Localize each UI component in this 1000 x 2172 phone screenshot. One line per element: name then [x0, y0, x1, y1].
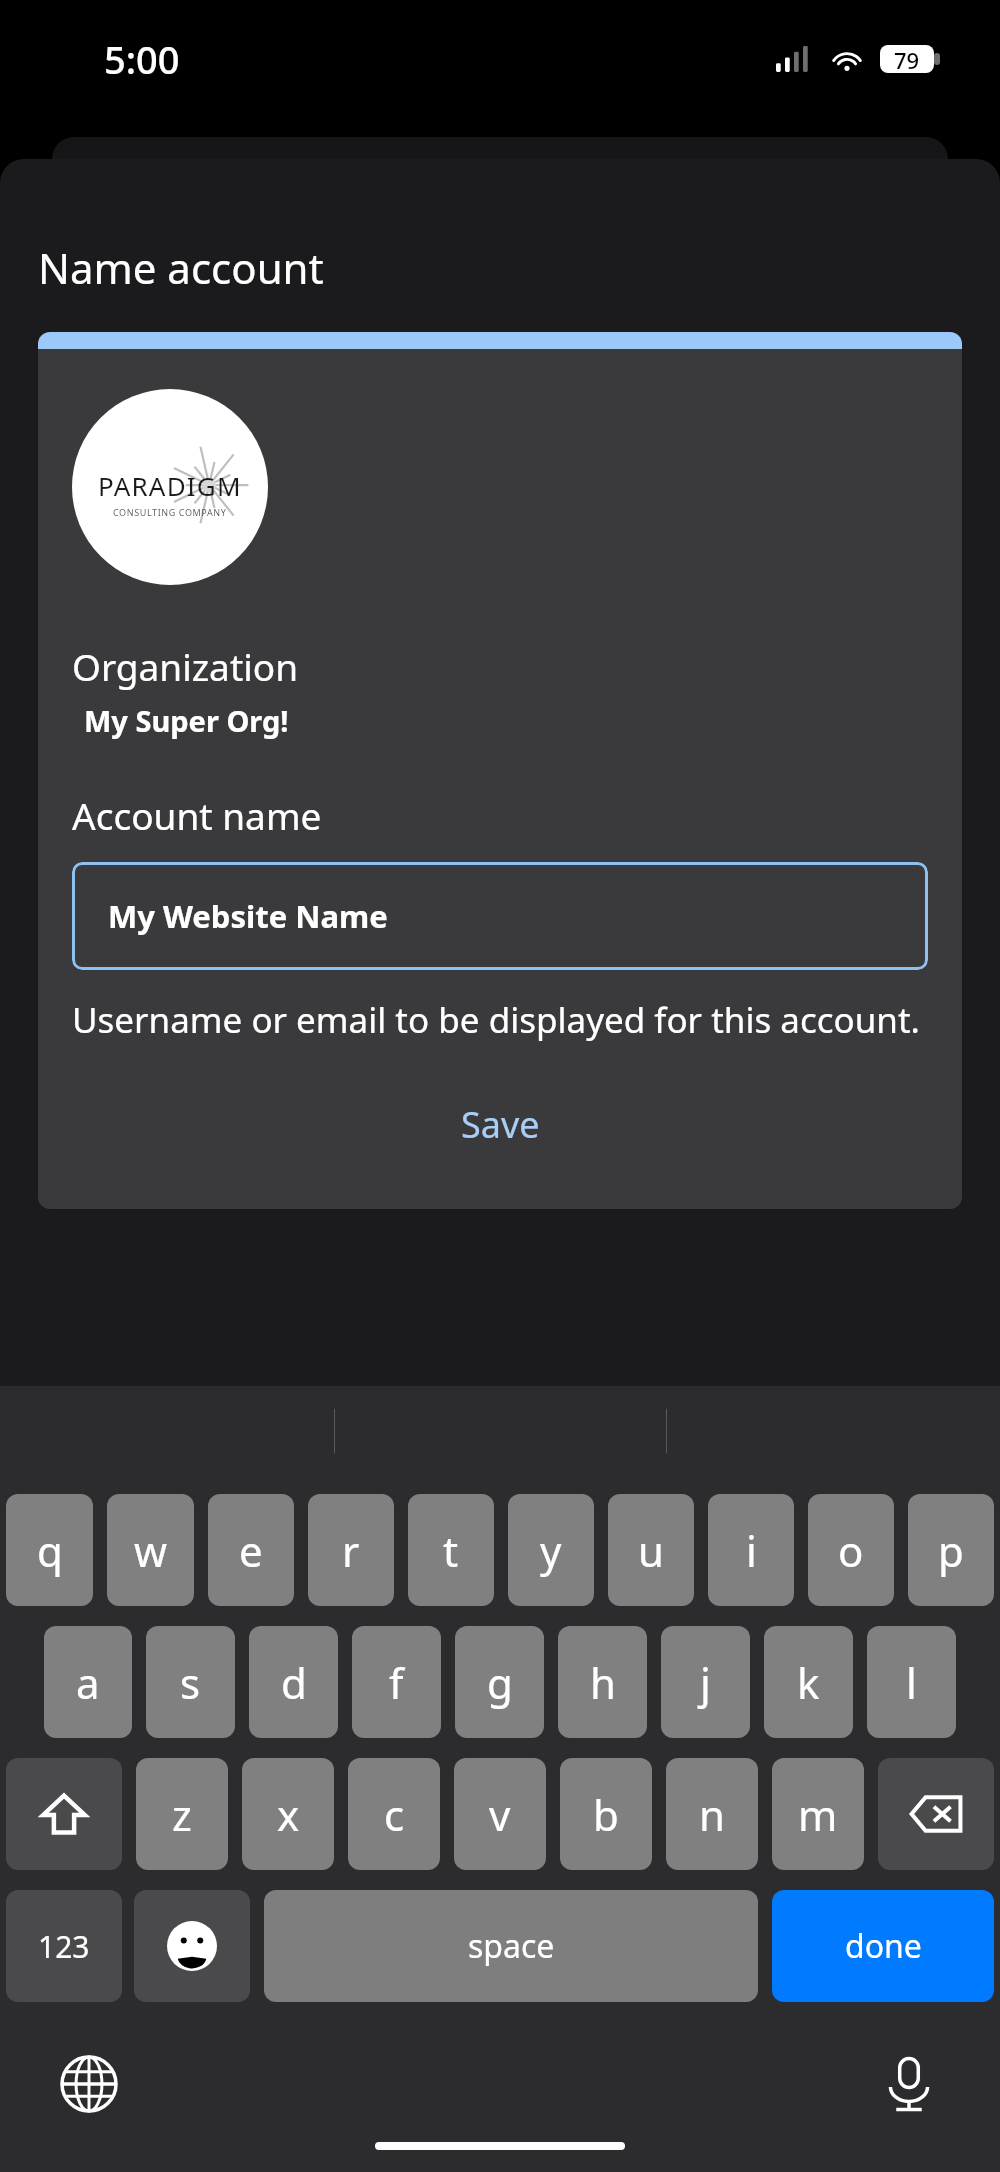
staticText: o — [838, 1522, 864, 1579]
button[interactable]: g — [455, 1626, 544, 1738]
staticText: u — [638, 1522, 664, 1579]
staticText: space — [468, 1924, 555, 1968]
staticText: Account name — [72, 790, 322, 840]
button[interactable]: Backspace — [878, 1758, 994, 1870]
staticText: p — [938, 1522, 964, 1579]
staticText: z — [172, 1786, 192, 1843]
button[interactable]: space — [264, 1890, 758, 2002]
button[interactable]: d — [249, 1626, 338, 1738]
staticText: i — [746, 1522, 757, 1579]
staticText: f — [389, 1654, 404, 1711]
button[interactable]: s — [146, 1626, 235, 1738]
staticText: 79 — [894, 45, 920, 73]
button[interactable]: x — [242, 1758, 334, 1870]
button[interactable]: r — [308, 1494, 394, 1606]
staticText: CONSULTING COMPANY — [113, 506, 227, 518]
staticText: g — [487, 1654, 513, 1711]
staticText: My Super Org! — [84, 701, 289, 740]
button[interactable]: v — [454, 1758, 546, 1870]
staticText: Save — [461, 1100, 540, 1149]
staticText: t — [443, 1522, 459, 1579]
staticText: q — [37, 1522, 63, 1579]
staticText: k — [797, 1654, 820, 1711]
staticText: Name account — [38, 239, 324, 296]
staticText: 5:00 — [104, 33, 180, 85]
button[interactable]: k — [764, 1626, 853, 1738]
button[interactable]: Emoji — [134, 1890, 250, 2002]
button[interactable]: Dictate — [880, 2055, 938, 2113]
button[interactable]: Save — [461, 1100, 540, 1149]
button[interactable]: f — [352, 1626, 441, 1738]
button[interactable]: l — [867, 1626, 956, 1738]
staticText: m — [798, 1786, 838, 1843]
staticText: n — [699, 1786, 725, 1843]
button[interactable]: My Website Name — [72, 862, 928, 970]
staticText: s — [180, 1654, 201, 1711]
button[interactable]: b — [560, 1758, 652, 1870]
button[interactable]: h — [558, 1626, 647, 1738]
button[interactable]: Shift — [6, 1758, 122, 1870]
button[interactable]: y — [508, 1494, 594, 1606]
staticText: d — [281, 1654, 307, 1711]
staticText: My Website Name — [108, 895, 388, 937]
staticText: h — [590, 1654, 616, 1711]
staticText: Organization — [72, 641, 299, 691]
staticText: w — [134, 1522, 168, 1579]
staticText: b — [593, 1786, 619, 1843]
staticText: e — [239, 1522, 263, 1579]
staticText: c — [384, 1786, 405, 1843]
staticText: j — [700, 1654, 711, 1711]
button[interactable]: m — [772, 1758, 864, 1870]
staticText: v — [489, 1786, 511, 1843]
button[interactable]: done — [772, 1890, 994, 2002]
button[interactable]: u — [608, 1494, 694, 1606]
staticText: l — [906, 1654, 917, 1711]
button[interactable]: t — [408, 1494, 494, 1606]
staticText: 123 — [38, 1926, 90, 1967]
button[interactable]: w — [107, 1494, 194, 1606]
button[interactable]: n — [666, 1758, 758, 1870]
button[interactable]: Change keyboard — [60, 2055, 118, 2113]
staticText: r — [342, 1522, 360, 1579]
button[interactable]: e — [208, 1494, 294, 1606]
staticText: PARADIGM — [98, 468, 242, 503]
button[interactable]: q — [6, 1494, 93, 1606]
staticText: a — [76, 1654, 100, 1711]
button[interactable]: p — [908, 1494, 994, 1606]
staticText: y — [540, 1522, 562, 1579]
staticText: Username or email to be displayed for th… — [72, 996, 920, 1044]
button[interactable]: i — [708, 1494, 794, 1606]
button[interactable]: z — [136, 1758, 228, 1870]
staticText: done — [845, 1924, 922, 1968]
button[interactable]: j — [661, 1626, 750, 1738]
button[interactable]: o — [808, 1494, 894, 1606]
button[interactable]: 123 — [6, 1890, 122, 2002]
staticText: x — [277, 1786, 300, 1843]
button[interactable]: c — [348, 1758, 440, 1870]
button[interactable]: a — [44, 1626, 132, 1738]
